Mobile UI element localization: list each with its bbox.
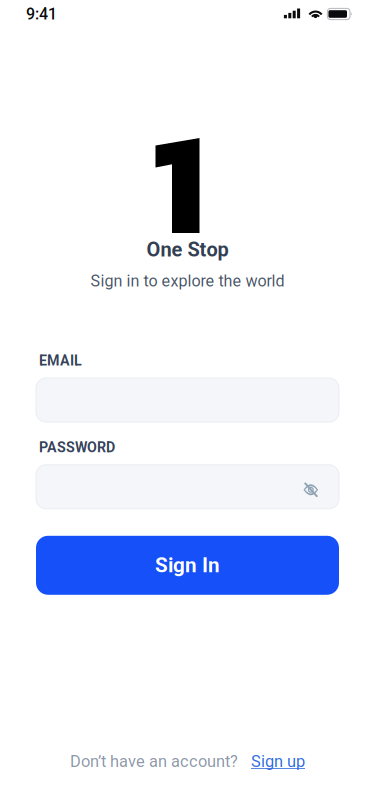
staticText: Sign In (155, 553, 220, 577)
button[interactable]: Sign up (251, 752, 305, 771)
staticText: EMAIL (39, 352, 82, 369)
button[interactable]: Sign In (36, 536, 339, 595)
button[interactable]: Password (36, 465, 339, 509)
staticText: Sign up (251, 752, 305, 771)
staticText: 9:41 (26, 5, 57, 23)
button[interactable]: Show password (289, 465, 333, 509)
staticText: Sign in to explore the world (90, 271, 284, 290)
staticText: PASSWORD (39, 439, 115, 456)
staticText: Don’t have an account? (70, 752, 238, 771)
staticText: One Stop (146, 238, 228, 261)
